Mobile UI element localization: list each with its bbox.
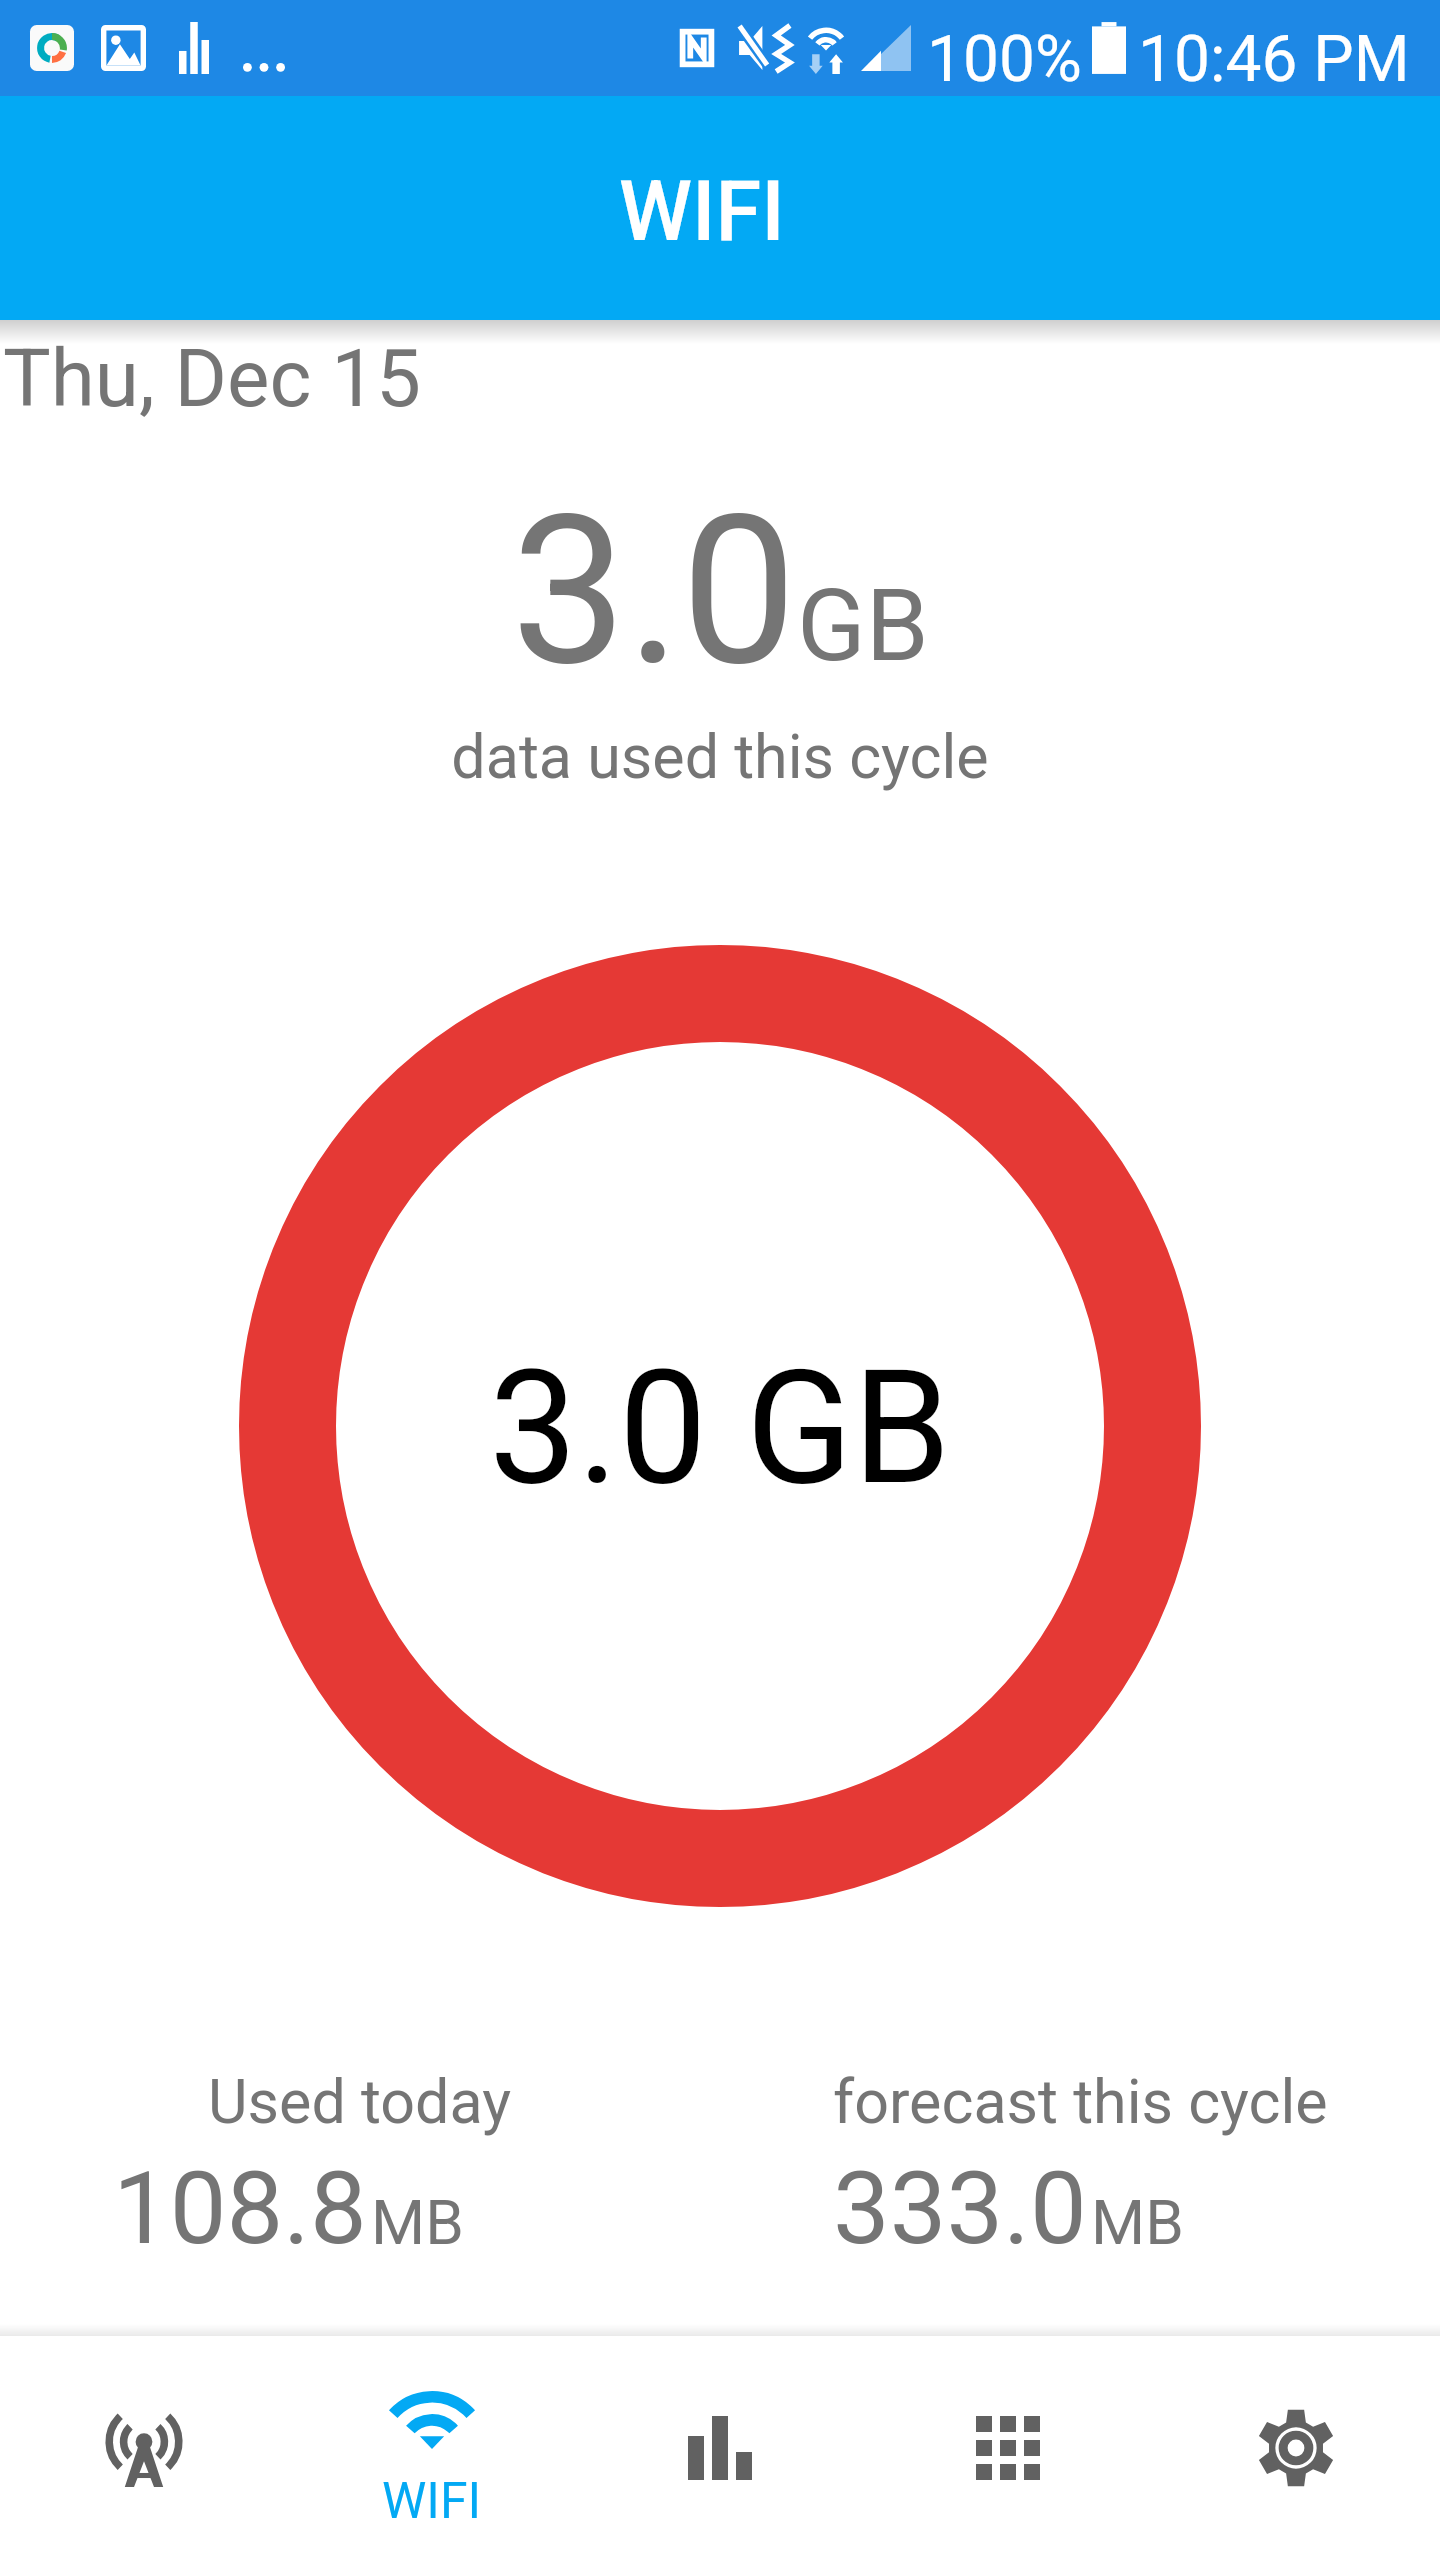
staticText: 10:46 PM: [1138, 22, 1410, 97]
button[interactable]: WIFI: [288, 2336, 576, 2560]
staticText: Thu, Dec 15: [3, 332, 422, 426]
staticText: forecast this cycle: [833, 2066, 1328, 2137]
staticText: WIFI: [382, 2472, 482, 2531]
button[interactable]: Apps: [864, 2336, 1152, 2560]
button[interactable]: Cellular: [0, 2336, 288, 2560]
staticText: 3.0: [511, 471, 797, 712]
button[interactable]: Settings: [1152, 2336, 1440, 2560]
staticText: GB: [797, 566, 929, 684]
staticText: MB: [371, 2186, 464, 2259]
staticText: 100%: [927, 22, 1082, 97]
staticText: 3.0 GB: [489, 1336, 951, 1520]
staticText: 108.8: [113, 2149, 367, 2267]
staticText: MB: [1091, 2186, 1184, 2259]
staticText: data used this cycle: [0, 721, 1440, 792]
staticText: Used today: [208, 2066, 512, 2137]
staticText: 333.0: [833, 2149, 1087, 2267]
button[interactable]: Statistics: [576, 2336, 864, 2560]
staticText: WIFI: [619, 163, 785, 260]
